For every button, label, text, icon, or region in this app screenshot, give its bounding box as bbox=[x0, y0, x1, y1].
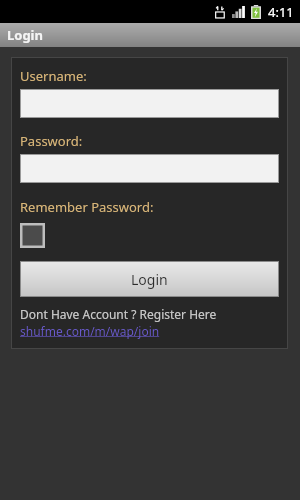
staticText: Username: bbox=[20, 67, 87, 85]
button[interactable]: Login bbox=[20, 261, 279, 297]
staticText: Dont Have Account ? Register Here bbox=[20, 306, 217, 322]
staticText: Password: bbox=[20, 132, 83, 150]
button[interactable]: Text input field bbox=[20, 154, 279, 183]
button[interactable]: Remember Password checkbox bbox=[20, 223, 45, 248]
staticText: Login bbox=[7, 26, 43, 44]
staticText: Remember Password: bbox=[20, 198, 154, 216]
button[interactable]: shufme.com/m/wap/join bbox=[20, 323, 160, 339]
staticText: 4:11 bbox=[268, 3, 294, 21]
staticText: Login bbox=[131, 270, 168, 289]
staticText: shufme.com/m/wap/join bbox=[20, 323, 160, 339]
button[interactable]: Text input field bbox=[20, 89, 279, 118]
